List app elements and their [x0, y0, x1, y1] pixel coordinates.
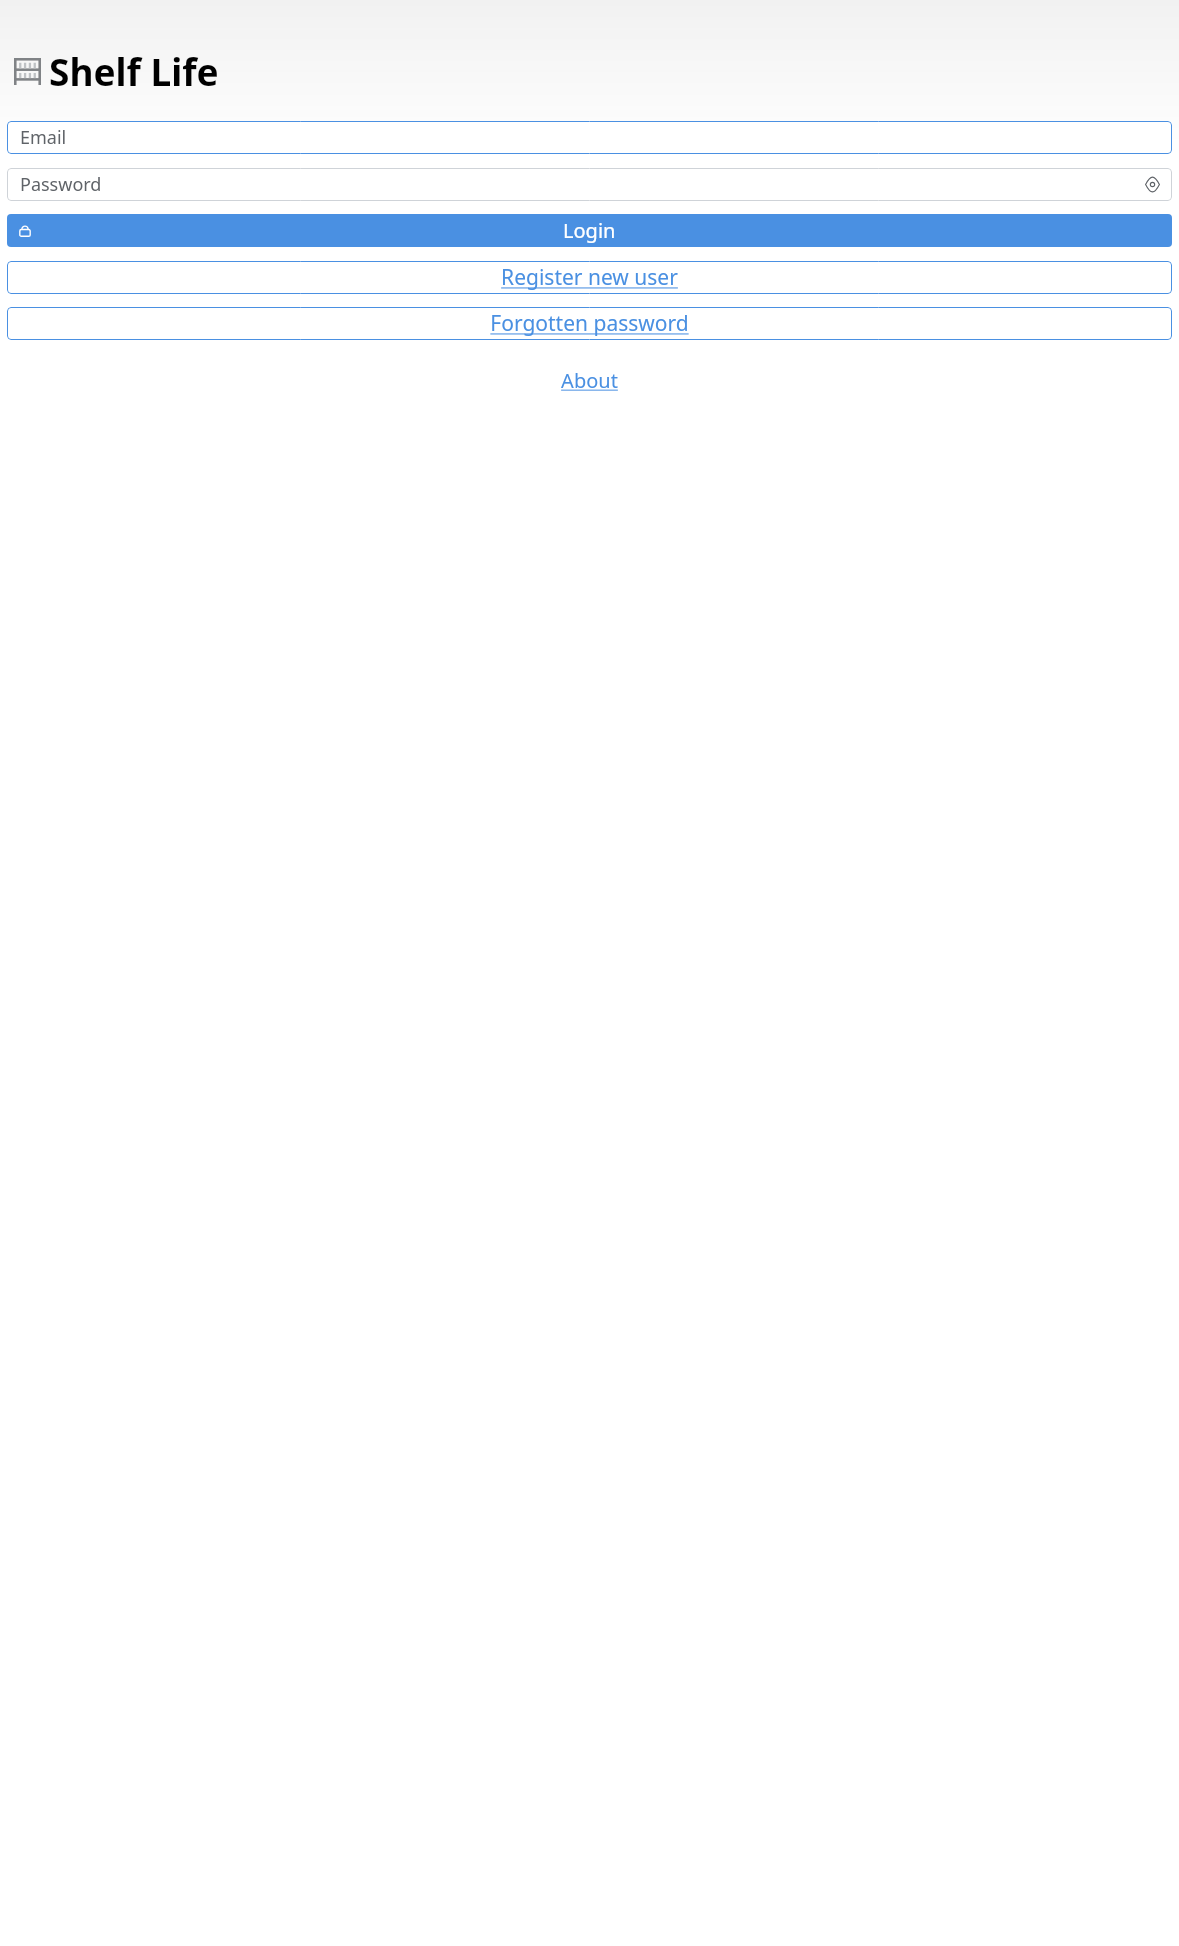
staticText: Password	[20, 172, 102, 197]
staticText: Shelf Life	[49, 46, 219, 96]
button[interactable]: Register new user	[7, 261, 1172, 294]
button[interactable]: Forgotten password	[7, 307, 1172, 340]
staticText: About	[561, 367, 618, 394]
staticText: Email	[20, 125, 67, 150]
button[interactable]: About	[555, 364, 624, 397]
button[interactable]: Email	[7, 121, 1172, 154]
staticText: Forgotten password	[490, 309, 689, 338]
staticText: Login	[563, 217, 616, 244]
button[interactable]: Password	[7, 168, 1172, 201]
button[interactable]: Show password	[1140, 172, 1165, 197]
button[interactable]: Login	[7, 214, 1172, 247]
other: Shelf Life logo	[14, 58, 41, 85]
staticText: Register new user	[501, 263, 678, 292]
